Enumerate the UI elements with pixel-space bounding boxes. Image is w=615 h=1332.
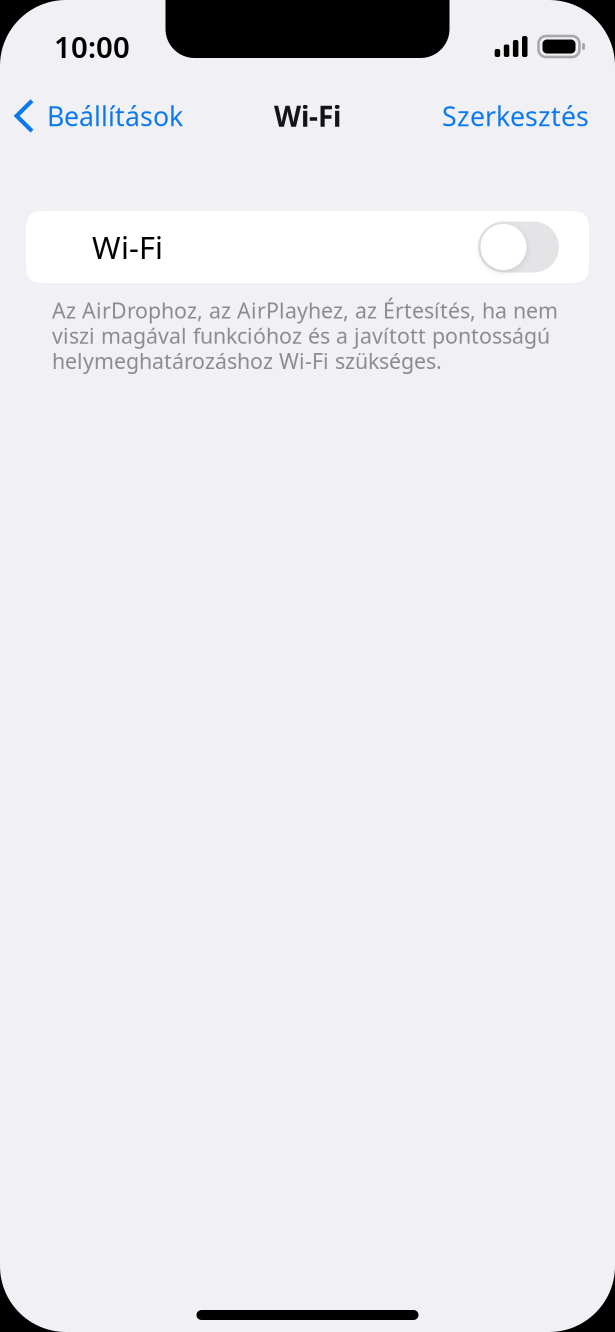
staticText: Wi-Fi bbox=[274, 97, 341, 135]
staticText: Wi-Fi bbox=[92, 227, 163, 267]
staticText: 10:00 bbox=[54, 27, 130, 66]
staticText: Az AirDrophoz, az AirPlayhez, az Értesít… bbox=[52, 296, 558, 375]
staticText: Szerkesztés bbox=[442, 98, 589, 134]
button[interactable]: Beállítások bbox=[0, 94, 193, 138]
button[interactable]: Szerkesztés bbox=[432, 94, 615, 138]
staticText: Beállítások bbox=[47, 98, 183, 134]
button[interactable]: Wi-Fi be- és kikapcsolása bbox=[478, 221, 559, 272]
